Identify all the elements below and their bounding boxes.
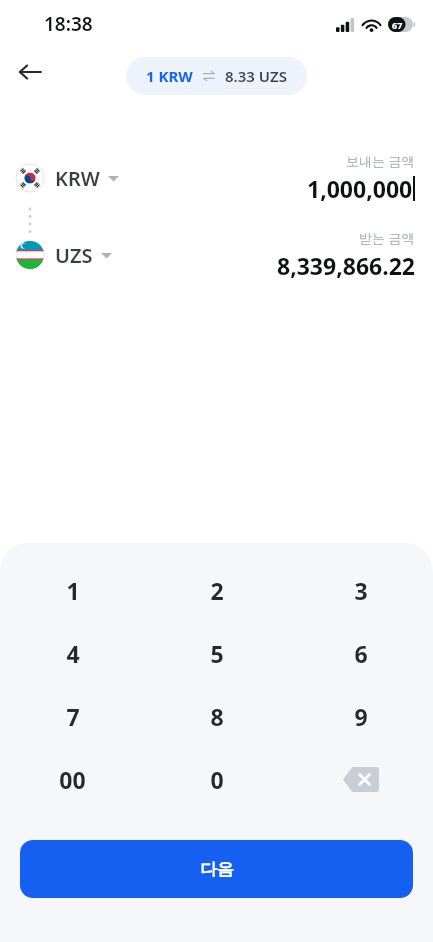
button[interactable]: 9 [289,685,433,748]
staticText: 0 [210,764,224,795]
staticText: 8 [210,701,224,732]
button[interactable]: 8 [145,685,289,748]
staticText: 8,339,866.22 [277,250,415,281]
staticText: 5 [210,638,224,669]
button[interactable]: 5 [145,622,289,685]
staticText: 1,000,000 [307,173,413,204]
staticText: KRW [55,165,100,192]
staticText: 4 [66,638,80,669]
button[interactable]: Back [8,50,52,94]
staticText: UZS [55,242,93,269]
staticText: 1 KRW [146,66,193,86]
button[interactable]: 1 [0,559,145,622]
staticText: 받는 금액 [359,229,415,247]
button[interactable]: KRW [0,147,433,209]
staticText: 2 [210,575,224,606]
staticText: 1 [66,575,80,606]
staticText: 00 [59,764,86,795]
staticText: 3 [354,575,368,606]
button[interactable]: 2 [145,559,289,622]
button[interactable]: 3 [289,559,433,622]
button[interactable]: 7 [0,685,145,748]
button[interactable]: 0 [145,748,289,811]
staticText: 18:38 [44,11,93,37]
staticText: 다음 [200,859,234,880]
staticText: 67 [392,19,403,31]
staticText: 8.33 UZS [225,66,287,86]
button[interactable]: 4 [0,622,145,685]
staticText: 6 [354,638,368,669]
button[interactable]: Backspace [289,748,433,811]
button[interactable]: 다음 [20,840,413,898]
button[interactable]: 6 [289,622,433,685]
button[interactable]: UZS [0,224,433,286]
staticText: 보내는 금액 [346,152,415,170]
button[interactable]: 1 KRW [126,57,307,95]
staticText: 9 [354,701,368,732]
staticText: 7 [66,701,80,732]
button[interactable]: 00 [0,748,145,811]
